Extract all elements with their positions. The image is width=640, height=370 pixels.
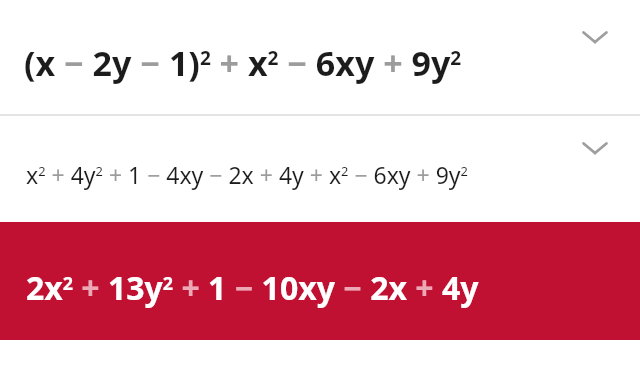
staticText: x2 + 4y2 + 1 − 4xy − 2x + 4y + x2 − 6xy … [26,159,468,190]
button[interactable]: Expand [571,124,619,172]
staticText: (x − 2y − 1)2 + x2 − 6xy + 9y2 [24,40,462,86]
button[interactable]: (x − 2y − 1)2 + x2 − 6xy + 9y2 [0,0,640,114]
button[interactable]: x2 + 4y2 + 1 − 4xy − 2x + 4y + x2 − 6xy … [0,116,640,222]
button[interactable]: Expand [571,13,619,61]
staticText: 2x2 + 13y2 + 1 − 10xy − 2x + 4y [26,266,479,310]
button[interactable]: 2x2 + 13y2 + 1 − 10xy − 2x + 4y [0,222,640,340]
